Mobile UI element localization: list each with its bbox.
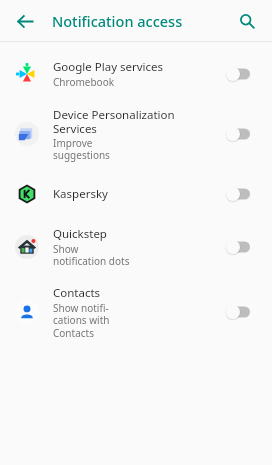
- staticText: Device Personalization Services: [53, 107, 175, 136]
- button[interactable]: Contacts: [0, 276, 272, 348]
- button[interactable]: Search: [230, 4, 264, 38]
- button[interactable]: Toggle Kaspersky: [224, 182, 258, 206]
- button[interactable]: Kaspersky: [0, 170, 272, 218]
- staticText: Quickstep: [53, 226, 107, 242]
- staticText: Google Play services: [53, 59, 164, 75]
- staticText: Show notifi- cations with Contacts: [53, 301, 110, 340]
- staticText: Kaspersky: [53, 186, 108, 202]
- button[interactable]: Google Play services: [0, 50, 272, 98]
- button[interactable]: Toggle Google Play services: [224, 62, 258, 86]
- staticText: Show notification dots: [53, 242, 130, 268]
- staticText: Improve suggestions: [53, 136, 110, 162]
- staticText: Contacts: [53, 285, 101, 301]
- button[interactable]: Back: [8, 4, 42, 38]
- staticText: Notification access: [52, 11, 183, 31]
- button[interactable]: Toggle Device Personalization Services: [224, 122, 258, 146]
- button[interactable]: Quickstep: [0, 218, 272, 276]
- button[interactable]: Device Personalization Services: [0, 98, 272, 170]
- button[interactable]: Toggle Contacts: [224, 300, 258, 324]
- button[interactable]: Toggle Quickstep: [224, 235, 258, 259]
- staticText: Chromebook: [53, 75, 115, 89]
